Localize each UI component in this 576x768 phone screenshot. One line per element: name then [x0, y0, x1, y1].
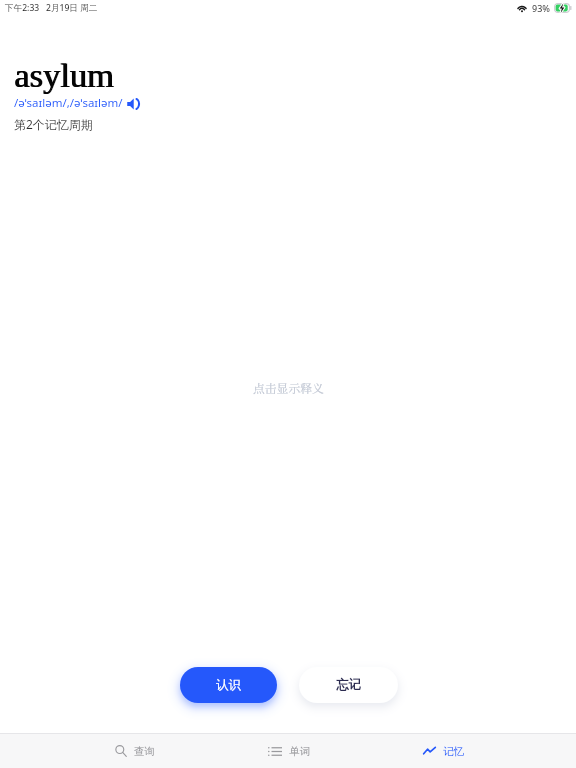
- staticText: 点击显示释义: [253, 379, 324, 396]
- button[interactable]: 查询: [58, 734, 212, 768]
- staticText: asylum: [15, 56, 115, 94]
- button[interactable]: 单词: [212, 734, 366, 768]
- button[interactable]: 点击显示释义: [247, 376, 330, 399]
- staticText: 记忆: [443, 745, 464, 758]
- staticText: 查询: [134, 745, 155, 758]
- staticText: 忘记: [336, 677, 361, 693]
- button[interactable]: Play pronunciation: [126, 97, 139, 110]
- staticText: asylum: [14, 56, 114, 94]
- button[interactable]: 记忆: [366, 734, 520, 768]
- button[interactable]: 认识: [180, 667, 277, 703]
- staticText: 单词: [289, 745, 310, 758]
- button[interactable]: 忘记: [299, 667, 398, 703]
- staticText: 下午2:33 2月19日 周二: [5, 2, 98, 14]
- staticText: /əˈsaɪləm/,/əˈsaɪləm/: [14, 95, 123, 111]
- staticText: asylum: [14, 56, 114, 94]
- staticText: 第2个记忆周期: [14, 116, 93, 132]
- staticText: 93%: [532, 2, 550, 14]
- staticText: 认识: [216, 677, 241, 693]
